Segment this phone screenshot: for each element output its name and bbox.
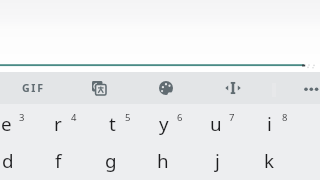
staticText: 5 [125, 111, 131, 124]
staticText: 7 [229, 111, 235, 124]
staticText: r [54, 111, 62, 137]
button[interactable]: Text editing [214, 72, 252, 104]
button[interactable]: i [243, 106, 295, 142]
button[interactable]: y [138, 106, 190, 142]
staticText: u [210, 111, 222, 137]
button[interactable]: r [32, 106, 84, 142]
button[interactable]: h [137, 143, 189, 179]
button[interactable]: j [191, 143, 243, 179]
staticText: GIF [22, 81, 45, 95]
staticText: d [2, 148, 14, 174]
button[interactable]: e [0, 106, 32, 142]
button[interactable]: f [32, 143, 84, 179]
button[interactable]: Translate [80, 72, 118, 104]
button[interactable]: k [243, 143, 295, 179]
button[interactable]: t [86, 106, 138, 142]
staticText: 6 [177, 111, 183, 124]
staticText: i [267, 111, 272, 137]
staticText: e [1, 111, 12, 137]
staticText: h [157, 148, 169, 174]
staticText: j [215, 148, 220, 174]
staticText: 4 [71, 111, 77, 124]
button[interactable]: u [190, 106, 242, 142]
staticText: g [105, 148, 117, 174]
staticText: t [109, 111, 116, 137]
staticText: 8 [282, 111, 288, 124]
button[interactable]: GIF [14, 72, 52, 104]
staticText: k [264, 148, 275, 174]
staticText: 3 [19, 111, 25, 124]
button[interactable]: d [0, 143, 34, 179]
button[interactable]: Themes [147, 72, 185, 104]
staticText: f [55, 148, 62, 174]
button[interactable]: More options [292, 72, 320, 104]
staticText: y [159, 111, 169, 137]
button[interactable]: g [85, 143, 137, 179]
